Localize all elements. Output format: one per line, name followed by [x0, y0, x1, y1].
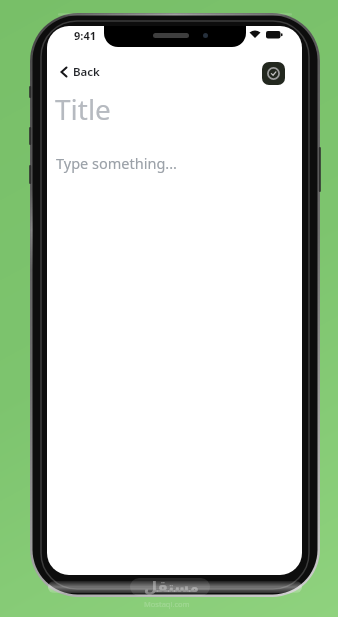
staticText: 9:41 [74, 28, 96, 43]
staticText: Title [55, 90, 111, 128]
staticText: Back [73, 64, 100, 80]
staticText: Mostaql.com [144, 599, 190, 609]
staticText: مستقل [144, 578, 199, 595]
staticText: Type something... [56, 153, 177, 173]
button[interactable] [262, 62, 285, 85]
button[interactable]: Back [55, 60, 104, 84]
